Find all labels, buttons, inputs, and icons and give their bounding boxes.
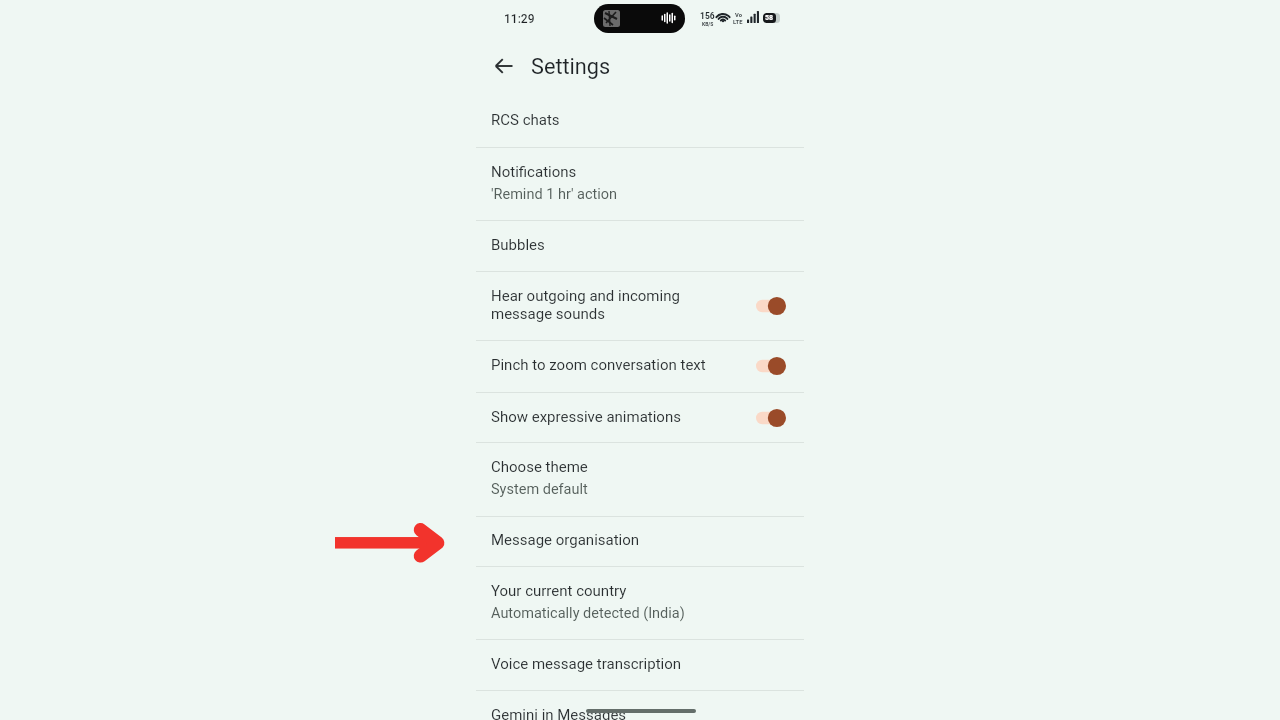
staticText: 156: [700, 11, 715, 21]
staticText: Settings: [531, 54, 611, 79]
staticText: Gemini in Messages: [491, 706, 627, 720]
button[interactable]: Hear outgoing and incoming message sound…: [756, 294, 786, 318]
staticText: Show expressive animations: [491, 408, 681, 426]
staticText: Voice message transcription: [491, 655, 682, 673]
button[interactable]: Bubbles: [476, 220, 804, 271]
staticText: Pinch to zoom conversation text: [491, 356, 706, 374]
staticText: Choose theme: [491, 458, 588, 476]
button[interactable]: Message organisation: [476, 516, 804, 566]
staticText: 11:29: [504, 12, 535, 26]
button[interactable]: RCS chats: [476, 95, 804, 147]
button[interactable]: Pinch to zoom conversation text: [756, 354, 786, 378]
staticText: LTE: [733, 19, 743, 26]
staticText: 58: [765, 14, 774, 22]
button[interactable]: Back: [490, 52, 517, 79]
button[interactable]: Your current country: [476, 566, 804, 639]
staticText: Hear outgoing and incoming message sound…: [491, 287, 706, 323]
staticText: RCS chats: [491, 111, 560, 129]
button[interactable]: Gemini in Messages: [476, 690, 804, 720]
staticText: Bubbles: [491, 236, 545, 254]
staticText: 'Remind 1 hr' action: [491, 186, 618, 203]
button[interactable]: Show expressive animations: [476, 392, 804, 443]
button[interactable]: Show expressive animations: [756, 406, 786, 430]
button[interactable]: Choose theme: [476, 442, 804, 515]
staticText: Message organisation: [491, 531, 640, 549]
staticText: System default: [491, 481, 588, 498]
staticText: Your current country: [491, 582, 627, 600]
button[interactable]: Voice message transcription: [476, 639, 804, 690]
button[interactable]: Hear outgoing and incoming message sound…: [476, 271, 804, 340]
button[interactable]: Pinch to zoom conversation text: [476, 340, 804, 392]
staticText: Vo: [735, 12, 742, 19]
button[interactable]: Notifications: [476, 147, 804, 220]
staticText: Notifications: [491, 163, 577, 181]
staticText: KB/S: [702, 21, 714, 27]
staticText: Automatically detected (India): [491, 605, 685, 622]
